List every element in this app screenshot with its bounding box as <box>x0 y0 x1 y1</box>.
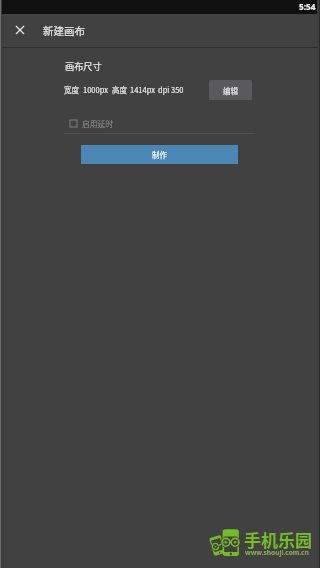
staticText: 手机乐园 <box>244 527 312 552</box>
staticText: dpi 350 <box>158 84 184 95</box>
staticText: 启用延时 <box>82 118 114 129</box>
staticText: 画布尺寸 <box>65 59 102 72</box>
staticText: www.shouji.com.cn <box>245 548 309 557</box>
staticText: 编辑 <box>223 85 238 96</box>
staticText: 宽度 <box>64 84 79 95</box>
button[interactable]: 启用延时 <box>64 115 144 132</box>
staticText: 1414px <box>130 84 155 95</box>
button[interactable]: 编辑 <box>209 80 252 100</box>
staticText: 5:54 <box>299 1 316 12</box>
button[interactable]: Close <box>8 14 31 47</box>
staticText: 新建画布 <box>43 23 85 38</box>
staticText: 高度 <box>112 84 127 95</box>
staticText: 制作 <box>152 149 167 160</box>
staticText: 1000px <box>83 84 108 95</box>
button[interactable]: 制作 <box>81 145 238 164</box>
